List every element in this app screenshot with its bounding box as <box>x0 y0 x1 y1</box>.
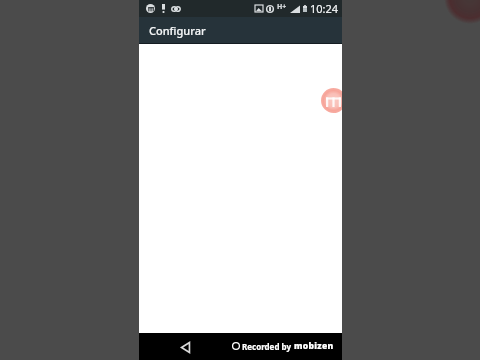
staticText: 10:24 <box>310 1 339 16</box>
button[interactable]: Back <box>175 337 195 357</box>
button[interactable]: Configurar <box>139 17 216 44</box>
staticText: H+ <box>277 2 287 12</box>
staticText: Configurar <box>149 23 206 38</box>
staticText: Recorded by <box>242 341 291 352</box>
staticText: mobizen <box>294 340 334 352</box>
button[interactable]: Mobizen recorder <box>321 88 342 113</box>
